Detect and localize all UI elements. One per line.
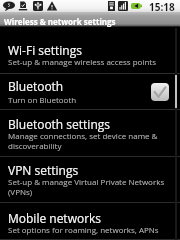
staticText: 15:18 xyxy=(149,0,175,12)
staticText: Set options for roaming, networks, APNs xyxy=(8,224,159,235)
button[interactable]: Bluetooth settings xyxy=(0,110,180,157)
staticText: VPN settings xyxy=(8,162,79,178)
button[interactable]: Mobile networks xyxy=(0,203,180,240)
staticText: Bluetooth settings xyxy=(8,116,110,132)
button[interactable]: Wi-Fi settings xyxy=(0,38,180,74)
other: Turn on Bluetooth xyxy=(151,83,169,101)
staticText: Set-up & manage Virtual Private Networks… xyxy=(8,176,165,197)
staticText: Bluetooth xyxy=(8,78,64,94)
staticText: Wireless & network settings xyxy=(4,16,116,27)
button[interactable]: Bluetooth xyxy=(0,74,180,110)
staticText: Mobile networks xyxy=(8,210,102,226)
staticText: Wi-Fi settings xyxy=(8,42,82,58)
button[interactable]: VPN settings xyxy=(0,157,180,203)
staticText: Manage connections, set device name & di… xyxy=(8,130,158,151)
staticText: Set-up & manage wireless access points xyxy=(8,56,157,67)
staticText: Turn on Bluetooth xyxy=(8,94,77,105)
